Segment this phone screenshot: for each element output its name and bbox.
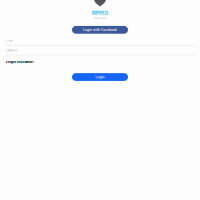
staticText: Password — [6, 49, 18, 52]
staticText: Login with Facebook — [83, 28, 117, 32]
button[interactable]: Login with Facebook — [72, 26, 128, 34]
staticText: RIPPED — [92, 11, 108, 16]
button[interactable]: Forgot Password? — [6, 60, 34, 64]
staticText: Login — [95, 75, 104, 79]
staticText: Forgot Password? — [6, 60, 34, 64]
staticText: Email — [6, 39, 13, 42]
staticText: MAGAZINE — [94, 17, 106, 20]
button[interactable]: Login — [72, 73, 128, 81]
